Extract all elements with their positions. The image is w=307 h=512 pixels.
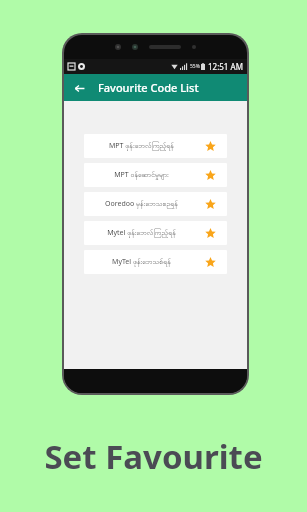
button[interactable]: MPT ဖုန်းဘေလ်ကြည့်ရန် [84, 134, 227, 158]
staticText: 12:51 AM [208, 61, 243, 72]
button[interactable]: MyTel ဖုန်းဘေသစ်ရန် [84, 250, 227, 274]
staticText: Mytel ဖုန်းဘေလ်ကြည့်ရန် [107, 228, 176, 239]
button[interactable]: Favourite [193, 163, 227, 187]
button[interactable]: MPT ဝန်ဆောင်မှုများ [84, 163, 227, 187]
staticText: 55% [190, 63, 200, 70]
button[interactable]: Favourite [193, 250, 227, 274]
button[interactable]: Ooredoo မှန်းဘေသစဉရန် [84, 192, 227, 216]
staticText: Favourite Code List [98, 80, 199, 95]
staticText: Ooredoo မှန်းဘေသစဉရန် [105, 199, 178, 210]
button[interactable]: Mytel ဖုန်းဘေလ်ကြည့်ရန် [84, 221, 227, 245]
button[interactable]: Favourite [193, 192, 227, 216]
staticText: MPT ဖုန်းဘေလ်ကြည့်ရန် [109, 141, 174, 152]
staticText: MPT ဝန်ဆောင်မှုများ [114, 170, 169, 181]
button[interactable]: Favourite [193, 134, 227, 158]
staticText: Set Favourite [44, 434, 263, 479]
staticText: MyTel ဖုန်းဘေသစ်ရန် [112, 257, 171, 268]
button[interactable]: Favourite [193, 221, 227, 245]
button[interactable]: Back [69, 78, 89, 98]
